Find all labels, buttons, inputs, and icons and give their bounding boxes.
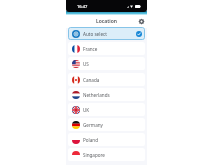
button[interactable]: Canada xyxy=(68,73,145,86)
staticText: Poland xyxy=(83,137,98,143)
staticText: Singapore xyxy=(83,152,105,158)
staticText: France xyxy=(83,46,98,52)
staticText: Auto select xyxy=(83,31,136,37)
staticText: Netherlands xyxy=(83,92,110,98)
button[interactable]: Poland xyxy=(68,133,145,146)
button[interactable]: Settings xyxy=(137,17,146,26)
button[interactable]: US xyxy=(68,57,145,70)
staticText: Canada xyxy=(83,77,100,83)
button[interactable]: France xyxy=(68,42,145,55)
button[interactable]: Germany xyxy=(68,118,145,131)
staticText: 16:47 xyxy=(77,4,88,9)
button[interactable]: Auto select xyxy=(68,27,145,40)
button[interactable]: UK xyxy=(68,103,145,116)
staticText: Location xyxy=(96,18,117,25)
button[interactable]: Singapore xyxy=(68,148,145,161)
staticText: US xyxy=(83,61,89,67)
button[interactable]: Netherlands xyxy=(68,88,145,101)
staticText: UK xyxy=(83,107,90,113)
staticText: Germany xyxy=(83,122,103,128)
